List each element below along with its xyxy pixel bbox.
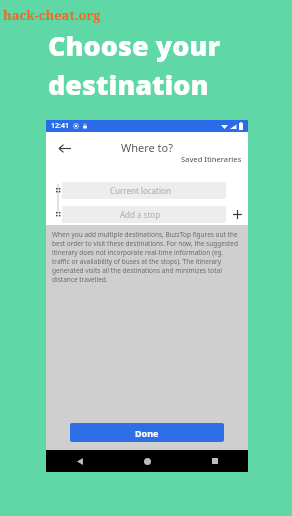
staticText: Done — [135, 427, 159, 439]
button[interactable]: Reorder — [53, 209, 63, 219]
staticText: Saved Itineraries — [181, 154, 242, 164]
button[interactable]: Current location — [62, 182, 226, 199]
staticText: Where to? — [121, 140, 174, 155]
staticText: Add a stop — [120, 209, 161, 220]
button[interactable]: Saved Itineraries — [181, 154, 248, 164]
staticText: destination — [48, 66, 209, 103]
button[interactable]: Back — [46, 450, 114, 472]
staticText: 12:41 — [51, 121, 69, 131]
staticText: When you add multiple destinations, Buzz… — [52, 230, 242, 284]
button[interactable]: Home — [114, 450, 181, 472]
button[interactable]: Done — [70, 423, 224, 442]
staticText: hack-cheat.org — [3, 6, 101, 24]
button[interactable]: Recent apps — [181, 450, 248, 472]
button[interactable]: Reorder — [53, 185, 63, 195]
button[interactable]: Add a stop — [62, 206, 226, 223]
button[interactable]: Back — [54, 138, 74, 158]
staticText: Choose your — [48, 27, 221, 64]
button[interactable]: Add a stop — [228, 205, 246, 223]
staticText: Current location — [110, 185, 171, 196]
